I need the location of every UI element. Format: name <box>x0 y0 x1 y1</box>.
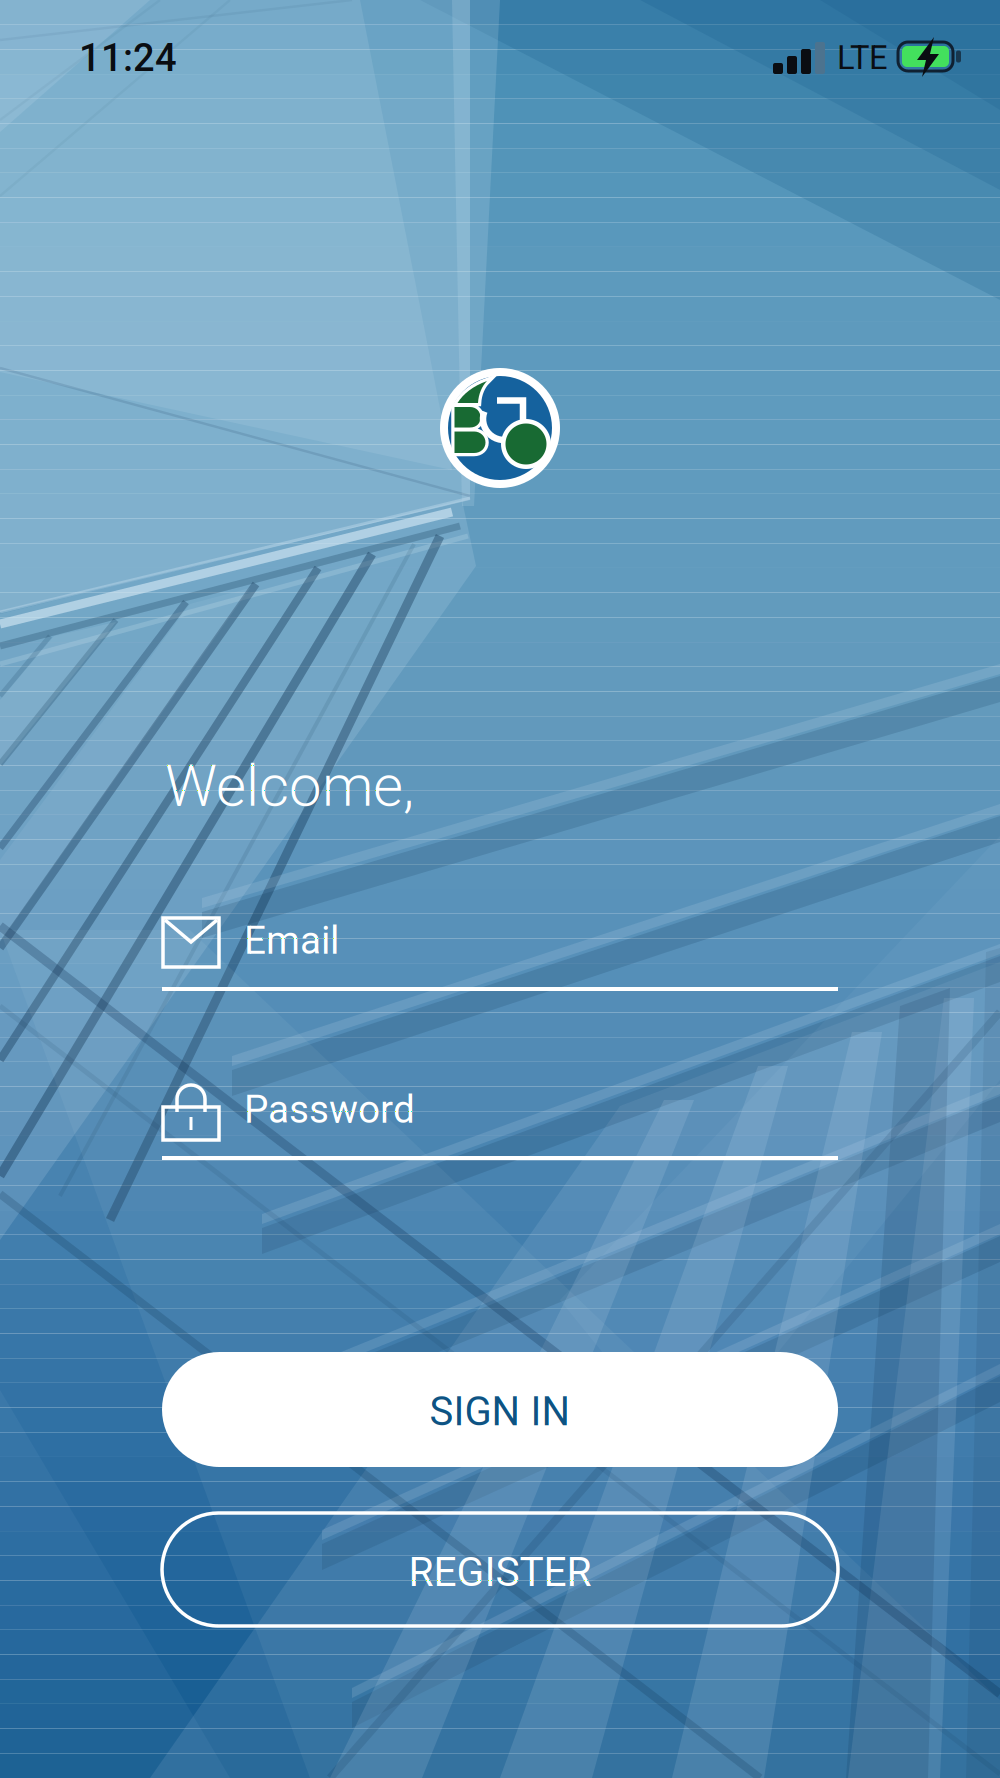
staticText: Email <box>244 918 339 963</box>
staticText: 11:24 <box>79 36 177 80</box>
staticText: SIGN IN <box>429 1388 570 1435</box>
staticText: REGISTER <box>408 1548 591 1596</box>
staticText: Password <box>244 1087 415 1132</box>
staticText: LTE <box>837 39 888 77</box>
staticText: Welcome, <box>165 752 414 820</box>
button[interactable]: SIGN IN <box>162 1352 838 1467</box>
button[interactable]: REGISTER <box>162 1513 838 1626</box>
